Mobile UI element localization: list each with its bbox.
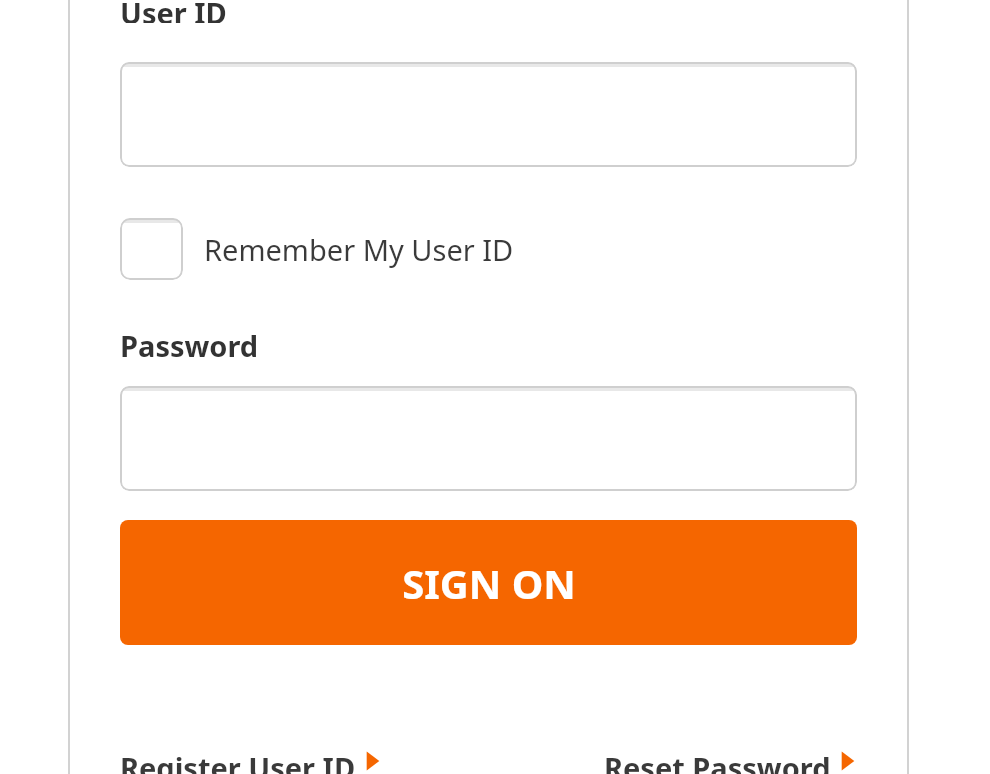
staticText: Remember My User ID xyxy=(204,230,514,269)
staticText: Register User ID xyxy=(120,748,356,774)
staticText: User ID xyxy=(120,0,227,23)
button[interactable] xyxy=(120,386,857,491)
staticText: SIGN ON xyxy=(402,556,576,610)
button[interactable]: Remember My User ID checkbox xyxy=(120,218,514,280)
button[interactable]: Register User ID xyxy=(120,748,382,774)
staticText: Password xyxy=(120,326,259,365)
button[interactable] xyxy=(120,62,857,167)
button[interactable]: Reset Password xyxy=(604,748,857,774)
button[interactable]: Remember My User ID checkbox xyxy=(120,218,183,280)
staticText: Reset Password xyxy=(604,748,831,774)
button[interactable]: SIGN ON xyxy=(120,520,857,645)
